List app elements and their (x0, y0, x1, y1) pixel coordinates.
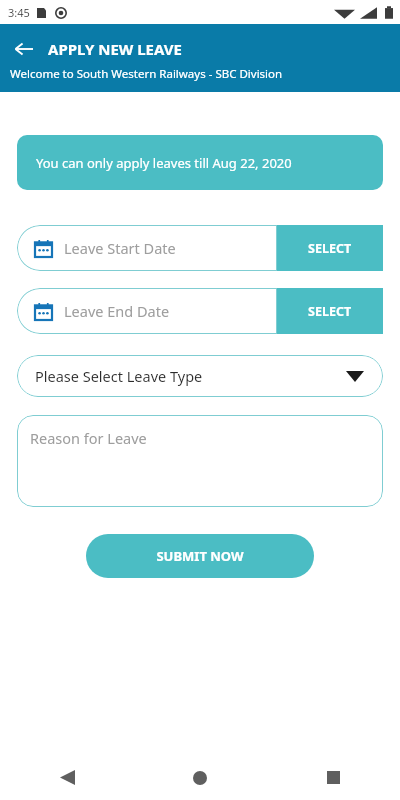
staticText: Welcome to South Western Railways - SBC … (10, 66, 283, 82)
button[interactable]: Reason for Leave (17, 415, 383, 507)
button[interactable]: Back (10, 35, 38, 63)
button[interactable]: You can only apply leaves till Aug 22, 2… (17, 135, 383, 190)
staticText: SELECT (308, 303, 352, 320)
button[interactable]: Recent apps (309, 755, 357, 800)
staticText: Please Select Leave Type (35, 366, 203, 386)
staticText: Leave End Date (64, 301, 170, 321)
button[interactable]: Leave Start Date (17, 225, 277, 271)
staticText: SUBMIT NOW (156, 547, 244, 565)
staticText: APPLY NEW LEAVE (48, 39, 182, 59)
staticText: Reason for Leave (30, 428, 147, 448)
staticText: SELECT (308, 240, 352, 257)
button[interactable]: Leave End Date (17, 288, 277, 334)
button[interactable]: SELECT (277, 225, 383, 271)
button[interactable]: Please Select Leave Type (17, 355, 383, 397)
staticText: 3:45 (8, 5, 30, 20)
button[interactable]: SUBMIT NOW (86, 534, 314, 578)
button[interactable]: Home (176, 755, 224, 800)
staticText: Leave Start Date (64, 238, 176, 258)
button[interactable]: Back (43, 755, 91, 800)
button[interactable]: SELECT (277, 288, 383, 334)
staticText: You can only apply leaves till Aug 22, 2… (36, 154, 292, 172)
